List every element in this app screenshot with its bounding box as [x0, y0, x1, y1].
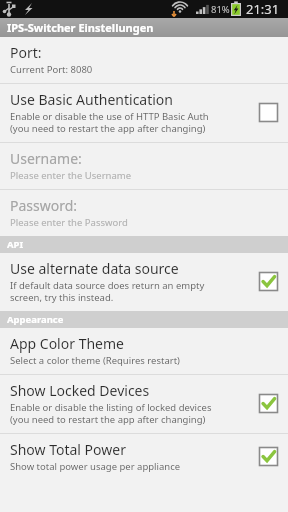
staticText: Show Locked Devices — [10, 381, 150, 400]
staticText: API — [7, 238, 24, 251]
button[interactable]: Show Total Power — [0, 434, 288, 480]
staticText: Please enter the Username — [10, 169, 132, 182]
staticText: Show total power usage per appliance — [10, 460, 181, 473]
staticText: Enable or disable the listing of locked … — [10, 401, 212, 426]
button[interactable]: Password: — [0, 190, 288, 236]
staticText: Current Port: 8080 — [10, 63, 93, 76]
button[interactable]: Unchecked — [258, 102, 279, 123]
staticText: Use alternate data source (recommended) — [10, 259, 252, 278]
staticText: App Color Theme — [10, 334, 124, 353]
staticText: 81% — [211, 3, 230, 16]
button[interactable]: Show Locked Devices — [0, 375, 288, 433]
button[interactable]: Username: — [0, 143, 288, 189]
staticText: Enable or disable the use of HTTP Basic … — [10, 110, 209, 135]
staticText: Show Total Power — [10, 440, 126, 459]
button[interactable]: Use Basic Authentication — [0, 84, 288, 142]
staticText: Select a color theme (Requires restart) — [10, 354, 180, 367]
button[interactable]: Checked — [258, 271, 279, 292]
button[interactable]: Port: — [0, 37, 288, 83]
staticText: Port: — [10, 43, 42, 62]
staticText: Appearance — [7, 313, 64, 326]
staticText: If default data source does return an em… — [10, 279, 205, 304]
button[interactable]: App Color Theme — [0, 328, 288, 374]
button[interactable]: Checked — [258, 393, 279, 414]
button[interactable]: Use alternate data source (recommended) — [0, 253, 288, 311]
button[interactable]: Checked — [258, 446, 279, 467]
staticText: Please enter the Password — [10, 216, 128, 229]
staticText: 21:31 — [246, 0, 280, 18]
staticText: IPS-Switcher Einstellungen — [7, 20, 154, 35]
staticText: Username: — [10, 149, 82, 168]
staticText: Password: — [10, 196, 78, 215]
staticText: Use Basic Authentication — [10, 90, 173, 109]
